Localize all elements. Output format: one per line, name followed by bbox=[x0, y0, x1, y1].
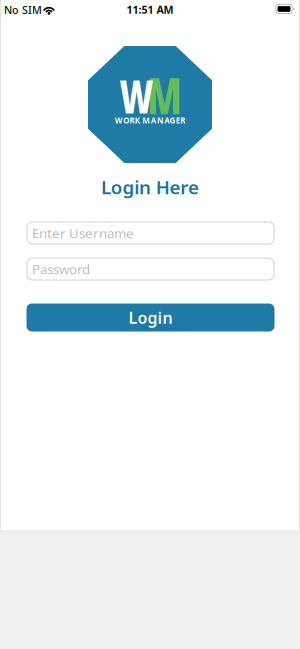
staticText: M bbox=[141, 62, 189, 128]
staticText: 11:51 AM bbox=[126, 2, 173, 17]
staticText: Password bbox=[32, 260, 90, 278]
staticText: No SIM bbox=[4, 3, 42, 17]
staticText: WORK MANAGER bbox=[115, 115, 185, 126]
staticText: Login Here bbox=[101, 175, 199, 199]
button[interactable]: Enter Username bbox=[27, 222, 274, 244]
button[interactable]: Login bbox=[26, 303, 274, 331]
button[interactable]: Password bbox=[27, 258, 274, 280]
staticText: W bbox=[113, 66, 160, 126]
staticText: Login bbox=[128, 307, 172, 328]
staticText: Enter Username bbox=[32, 224, 134, 242]
